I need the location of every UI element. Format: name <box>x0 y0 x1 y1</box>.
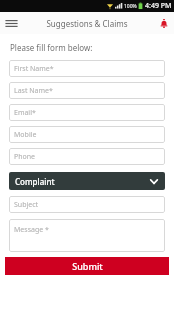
staticText: Message * <box>14 225 49 235</box>
button[interactable]: Subject <box>9 196 165 213</box>
button[interactable]: Mobile <box>9 126 165 143</box>
staticText: Phone <box>14 152 36 162</box>
button[interactable]: Submit <box>5 257 169 275</box>
staticText: Mobile <box>14 130 37 140</box>
staticText: First Name* <box>14 64 54 74</box>
button[interactable]: Notifications <box>154 13 174 33</box>
button[interactable]: Complaint <box>9 172 165 190</box>
staticText: Submit <box>72 260 103 272</box>
staticText: Last Name* <box>14 86 53 96</box>
staticText: 4:49 PM <box>145 1 172 11</box>
staticText: Complaint <box>15 176 55 187</box>
staticText: Please fill form below: <box>10 42 93 53</box>
button[interactable]: Phone <box>9 148 165 165</box>
button[interactable]: Open navigation menu <box>0 12 22 34</box>
staticText: Email* <box>14 108 36 118</box>
button[interactable]: First Name* <box>9 60 165 77</box>
button[interactable]: Email* <box>9 104 165 121</box>
staticText: Subject <box>14 200 39 210</box>
staticText: Suggestions & Claims <box>46 18 128 29</box>
button[interactable]: Message * <box>9 219 165 252</box>
staticText: 100% <box>124 3 137 10</box>
button[interactable]: Last Name* <box>9 82 165 99</box>
